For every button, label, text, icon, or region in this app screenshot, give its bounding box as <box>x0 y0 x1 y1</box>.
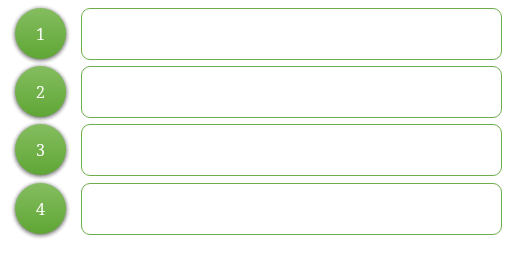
staticText: 1 <box>36 23 45 45</box>
staticText: 3 <box>36 139 45 161</box>
button[interactable]: Step 4 <box>15 183 66 234</box>
button[interactable]: Step 2 details <box>82 67 502 118</box>
button[interactable]: Step 3 details <box>82 125 502 176</box>
button[interactable]: Step 4 details <box>82 184 502 235</box>
button[interactable]: Step 3 <box>15 124 66 175</box>
button[interactable]: Step 2 <box>15 66 66 117</box>
button[interactable]: Step 1 <box>15 8 66 59</box>
staticText: 2 <box>36 81 45 103</box>
staticText: 4 <box>36 198 45 220</box>
button[interactable]: Step 1 details <box>82 9 502 60</box>
